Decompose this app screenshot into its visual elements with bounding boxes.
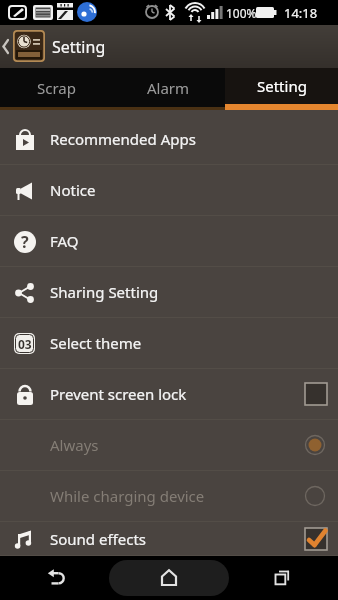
staticText: Sharing Setting — [50, 282, 159, 302]
button[interactable]: Prevent screen lock — [0, 369, 338, 420]
button[interactable] — [0, 556, 112, 600]
staticText: ? — [21, 231, 29, 253]
staticText: Setting — [257, 76, 307, 96]
staticText: Prevent screen lock — [50, 384, 187, 404]
button[interactable]: Setting — [225, 68, 338, 110]
staticText: 100% — [226, 5, 257, 21]
staticText: Sound effects — [50, 529, 147, 549]
staticText: Alarm — [147, 78, 190, 98]
staticText: While charging device — [50, 486, 205, 506]
staticText: Select theme — [50, 333, 142, 353]
button[interactable]: ? — [0, 216, 338, 267]
button[interactable]: Sound effects — [0, 522, 338, 556]
staticText: Setting — [52, 36, 106, 58]
button[interactable]: Always — [0, 420, 338, 471]
staticText: Always — [50, 435, 99, 455]
button[interactable]: While charging device — [0, 471, 338, 522]
staticText: 14:18 — [284, 4, 318, 22]
staticText: Recommended Apps — [50, 129, 196, 149]
button[interactable]: Setting — [0, 25, 338, 68]
button[interactable] — [112, 556, 225, 600]
button[interactable]: 03 — [0, 318, 338, 369]
staticText: Notice — [50, 180, 96, 200]
button[interactable]: Notice — [0, 165, 338, 216]
button[interactable]: Alarm — [112, 68, 225, 110]
button[interactable]: Scrap — [0, 68, 112, 110]
button[interactable]: Sharing Setting — [0, 267, 338, 318]
button[interactable] — [225, 556, 338, 600]
staticText: FAQ — [50, 231, 79, 251]
staticText: 03 — [18, 336, 32, 352]
button[interactable]: Recommended Apps — [0, 114, 338, 165]
staticText: Scrap — [37, 78, 76, 98]
